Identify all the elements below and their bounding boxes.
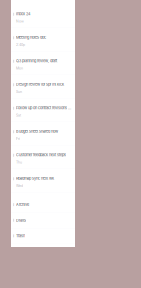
staticText: Customer feedback next steps <box>16 153 66 157</box>
staticText: Design review for sprint kick <box>16 82 64 87</box>
staticText: Follow up on contract revisions here <box>16 106 72 110</box>
button[interactable]: Roadmap sync next wk <box>11 169 75 193</box>
staticText: Archive <box>16 202 29 207</box>
staticText: Sat <box>16 113 21 117</box>
staticText: Drafts <box>16 218 26 223</box>
staticText: Meeting notes doc <box>16 35 46 40</box>
button[interactable]: Inbox 24 <box>11 5 75 28</box>
staticText: Budget sheet shared now <box>16 129 58 134</box>
staticText: Fri <box>16 136 20 141</box>
button[interactable]: Trash <box>11 228 75 244</box>
staticText: Thu <box>16 160 22 164</box>
staticText: Q3 planning review, draft <box>16 59 57 63</box>
staticText: Roadmap sync next wk <box>16 176 54 181</box>
button[interactable]: Q3 planning review, draft <box>11 52 75 75</box>
staticText: Wed <box>16 183 23 188</box>
button[interactable]: Design review for sprint kick <box>11 75 75 99</box>
button[interactable]: Meeting notes doc <box>11 28 75 52</box>
staticText: Inbox 24 <box>16 12 30 16</box>
staticText: 2:40p <box>16 42 25 47</box>
button[interactable]: Budget sheet shared now <box>11 122 75 146</box>
button[interactable]: Drafts <box>11 213 75 228</box>
button[interactable]: Customer feedback next steps <box>11 146 75 169</box>
staticText: Mon <box>16 66 23 70</box>
staticText: Sun <box>16 89 22 94</box>
staticText: Trash <box>16 233 25 238</box>
button[interactable]: Follow up on contract revisions here <box>11 99 75 122</box>
button[interactable]: Archive <box>11 197 75 213</box>
staticText: Now <box>16 19 24 23</box>
